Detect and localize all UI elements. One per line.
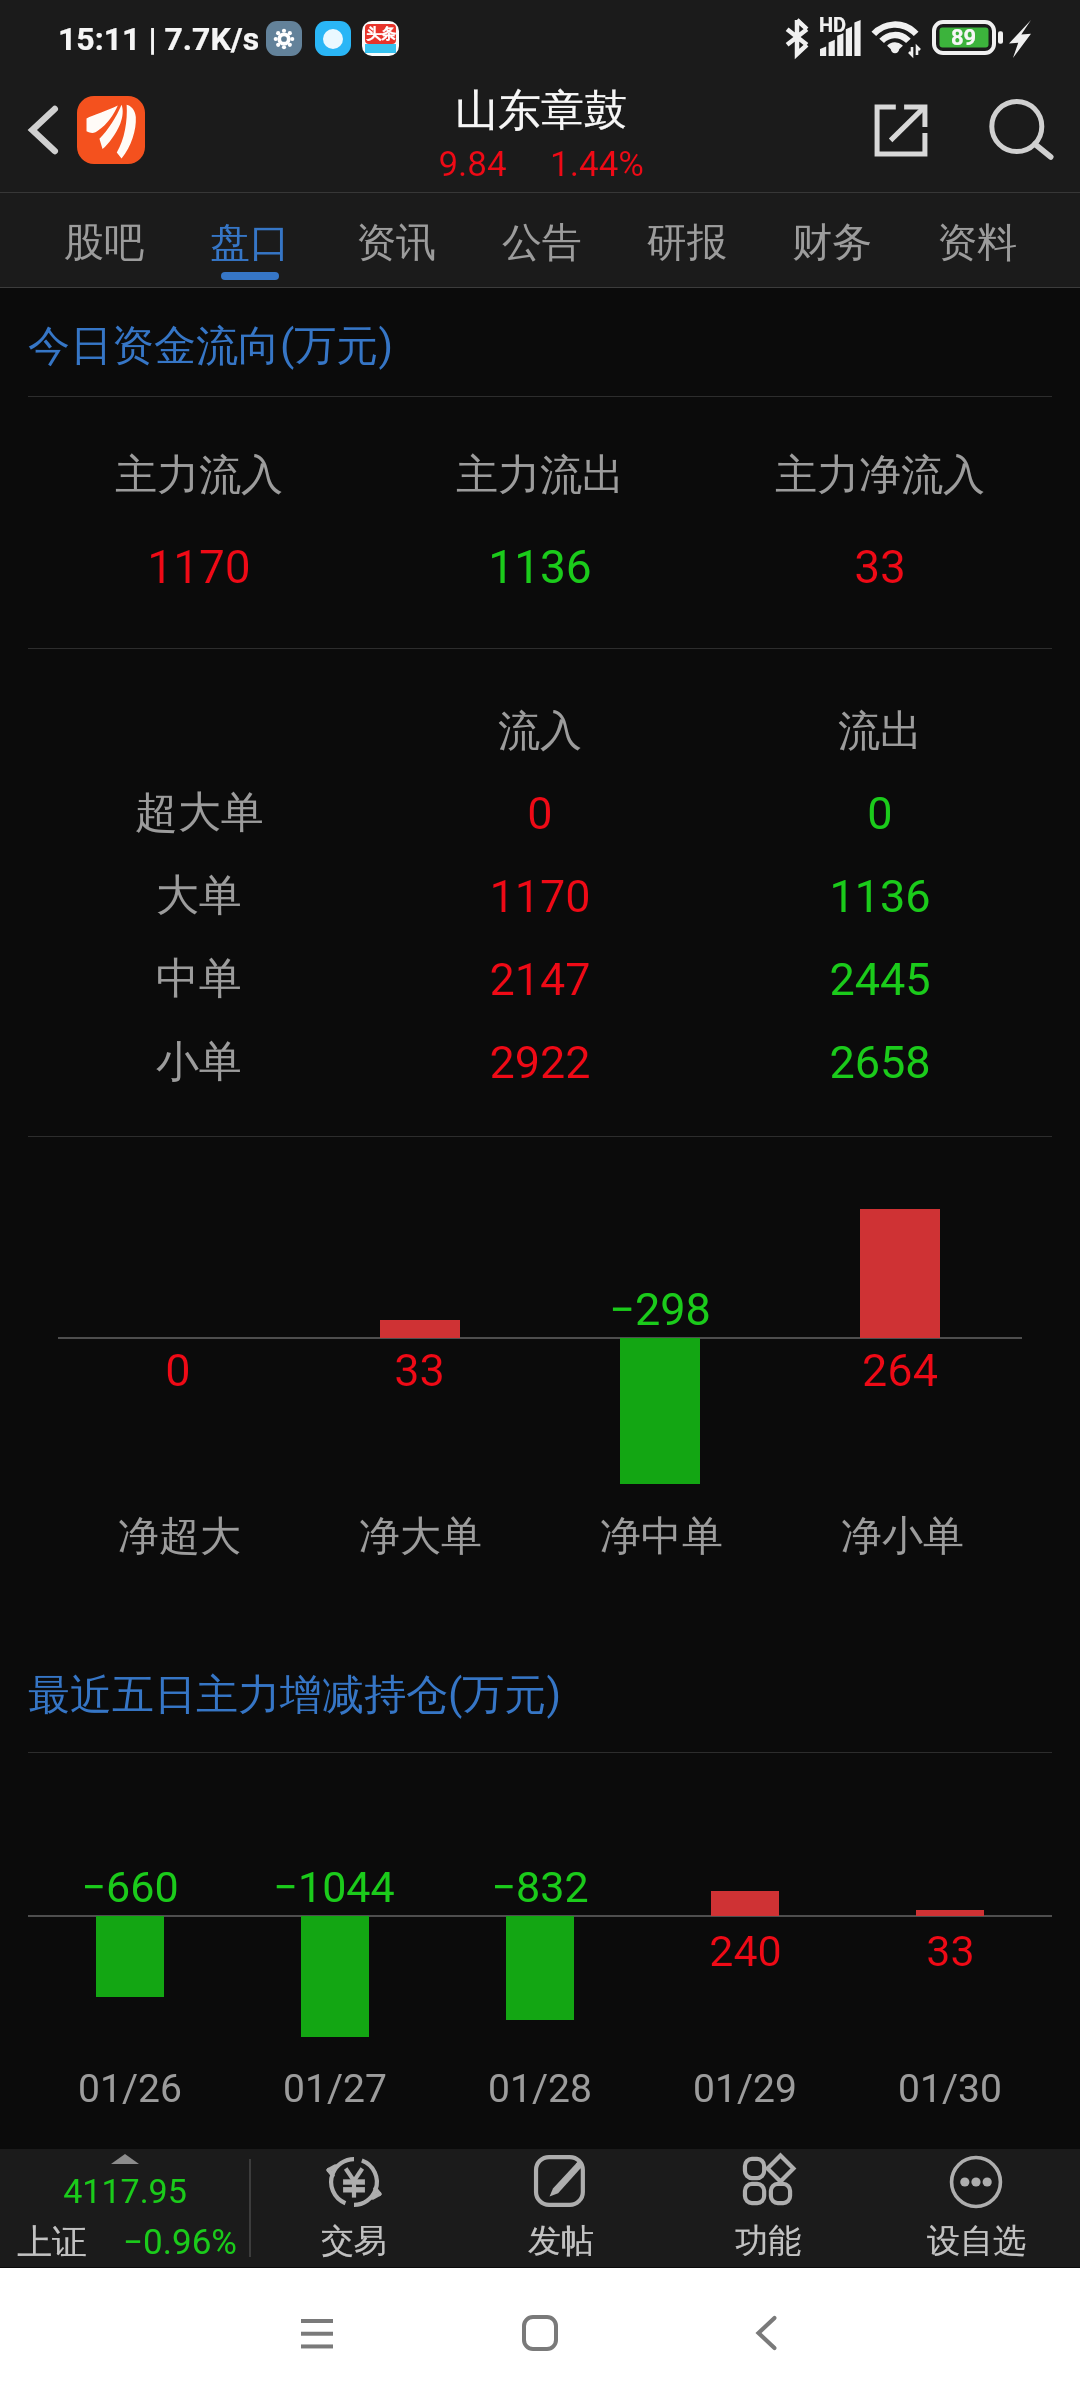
staticText: 264 [862,1344,938,1397]
staticText: 最近五日主力增减持仓(万元) [28,1669,561,1722]
staticText: 财务 [792,217,872,267]
staticText: 1170 [147,540,251,594]
staticText: 上证 [17,2220,87,2264]
staticText: 小单 [156,1035,242,1089]
staticText: 1170 [489,870,591,923]
staticText: 净中单 [600,1511,723,1563]
button[interactable]: 交易 [250,2149,457,2267]
staticText: 33 [394,1344,445,1397]
staticText: 4117.95 [63,2171,187,2211]
staticText: 大单 [156,869,242,923]
staticText: 1136 [829,870,931,923]
button[interactable]: 资料 [904,190,1049,288]
staticText: 9.84 [438,144,507,185]
staticText: 01/27 [283,2066,387,2112]
button[interactable]: 返回 [727,2294,805,2372]
staticText: −832 [491,1862,589,1912]
staticText: 33 [854,540,906,594]
staticText: 2445 [829,953,931,1006]
button[interactable]: 设自选 [872,2149,1080,2267]
staticText: 15:11 | 7.7K/s [58,20,260,58]
staticText: −660 [81,1862,179,1912]
staticText: 净超大 [118,1511,241,1563]
staticText: 设自选 [927,2220,1026,2262]
button[interactable]: 最近任务 [278,2294,356,2372]
staticText: 超大单 [135,786,264,840]
staticText: 2147 [489,953,591,1006]
button[interactable]: 公告 [469,190,614,288]
button[interactable]: 发帖 [457,2149,664,2267]
button[interactable]: 东方财富 [77,96,145,164]
staticText: 01/26 [78,2066,182,2112]
staticText: 功能 [735,2220,801,2262]
staticText: 01/30 [898,2066,1002,2112]
staticText: 今日资金流向(万元) [28,320,393,373]
staticText: 研报 [647,217,727,267]
staticText: 33 [926,1926,975,1976]
button[interactable]: 搜索 [960,86,1060,174]
button[interactable]: 研报 [614,190,759,288]
staticText: 净小单 [841,1511,964,1563]
staticText: 流入 [498,705,582,758]
staticText: 流出 [838,705,922,758]
button[interactable]: 分享 [856,86,946,174]
staticText: 股吧 [64,217,144,267]
staticText: 资料 [937,217,1017,267]
staticText: −0.96% [123,2222,237,2263]
staticText: −1044 [273,1862,395,1912]
staticText: 0 [867,787,893,840]
staticText: 240 [709,1926,782,1976]
staticText: 头条 [366,25,396,44]
staticText: 01/29 [693,2066,797,2112]
button[interactable]: 功能 [664,2149,872,2267]
staticText: 中单 [156,952,242,1006]
staticText: 盘口 [210,217,290,267]
button[interactable]: 4117.95 [0,2149,249,2267]
staticText: 2658 [829,1036,931,1089]
button[interactable]: 返回 [5,86,81,174]
button[interactable]: 主页 [501,2294,579,2372]
staticText: 主力流出 [456,449,624,502]
staticText: 89 [951,25,977,51]
staticText: 发帖 [528,2220,594,2262]
staticText: 山东章鼓 [455,84,627,138]
staticText: 1136 [488,540,592,594]
staticText: −298 [609,1283,711,1336]
button[interactable]: 资讯 [323,190,469,288]
staticText: 2922 [489,1036,591,1089]
staticText: 公告 [502,217,582,267]
staticText: 主力净流入 [775,449,985,502]
staticText: 净大单 [359,1511,482,1563]
staticText: 01/28 [488,2066,592,2112]
staticText: 交易 [321,2220,387,2262]
button[interactable]: 财务 [759,190,904,288]
staticText: 0 [527,787,553,840]
staticText: 1.44% [550,144,644,185]
staticText: 0 [165,1344,191,1397]
staticText: 资讯 [356,217,436,267]
staticText: HD [819,13,847,36]
button[interactable]: 股吧 [31,190,177,288]
staticText: 主力流入 [115,449,283,502]
button[interactable]: 盘口 [177,190,323,288]
